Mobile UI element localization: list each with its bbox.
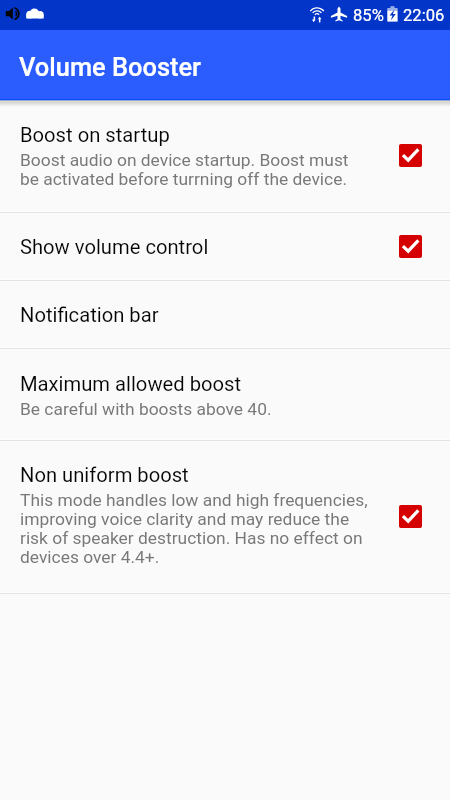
staticText: This mode handles low and high frequenci… bbox=[20, 491, 368, 567]
staticText: Be careful with boosts above 40. bbox=[20, 400, 272, 419]
staticText: Boost audio on device startup. Boost mus… bbox=[20, 151, 349, 189]
button[interactable]: Toggle Show volume control, checked bbox=[399, 235, 422, 258]
staticText: Volume Booster bbox=[19, 52, 202, 82]
staticText: Non uniform boost bbox=[20, 463, 189, 487]
button[interactable]: Notification bar bbox=[0, 281, 450, 347]
button[interactable]: Toggle Non uniform boost, checked bbox=[399, 505, 422, 528]
button[interactable]: Non uniform boost bbox=[0, 441, 450, 592]
staticText: Notification bar bbox=[20, 303, 159, 327]
button[interactable]: Toggle Boost on startup, checked bbox=[399, 144, 422, 167]
button[interactable]: Boost on startup bbox=[0, 100, 450, 211]
staticText: 85% bbox=[353, 6, 384, 25]
button[interactable]: Maximum allowed boost bbox=[0, 349, 450, 439]
button[interactable]: Show volume control bbox=[0, 213, 450, 279]
staticText: Boost on startup bbox=[20, 123, 170, 147]
staticText: Show volume control bbox=[20, 235, 209, 259]
staticText: Maximum allowed boost bbox=[20, 372, 242, 396]
staticText: 22:06 bbox=[403, 6, 445, 25]
